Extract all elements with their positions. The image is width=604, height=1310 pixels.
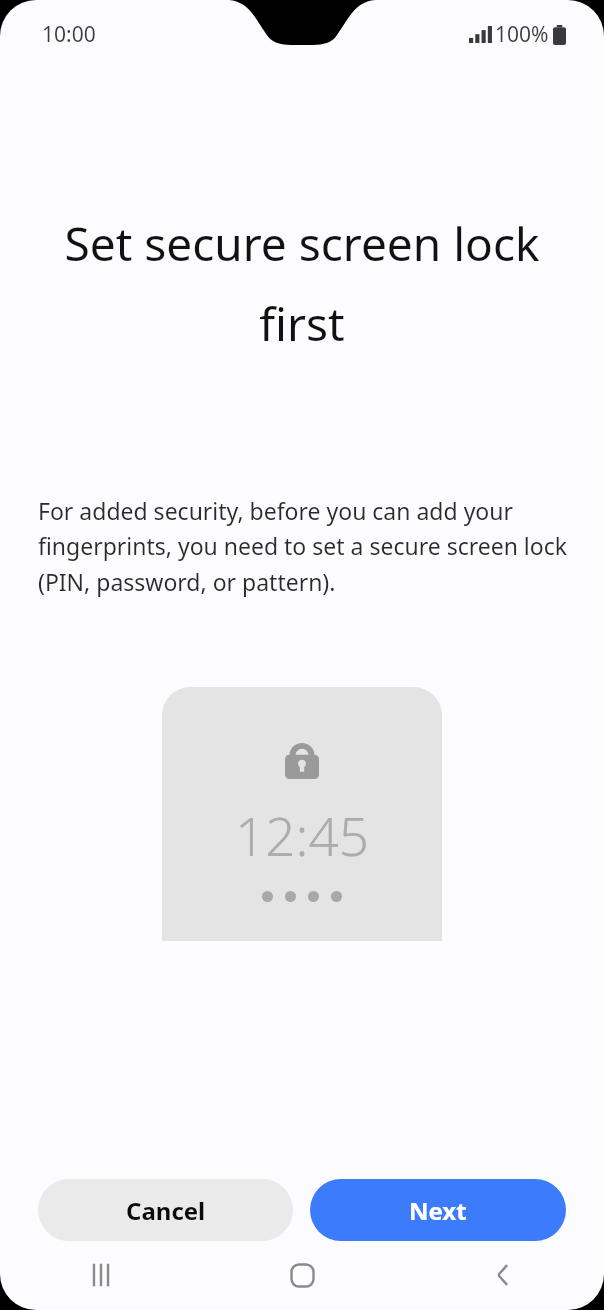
staticText: For added security, before you can add y… <box>38 495 570 598</box>
button[interactable]: Recent apps <box>0 1240 202 1310</box>
button[interactable]: Back <box>403 1240 604 1310</box>
staticText: 12:45 <box>235 799 369 871</box>
staticText: Cancel <box>126 1194 206 1227</box>
staticText: Next <box>409 1194 467 1227</box>
staticText: 10:00 <box>42 20 96 49</box>
staticText: 100% <box>495 20 549 49</box>
button[interactable]: Cancel <box>38 1179 293 1241</box>
staticText: Set secure screen lock first <box>44 212 560 354</box>
button[interactable]: Home <box>202 1240 403 1310</box>
button[interactable]: Next <box>310 1179 566 1241</box>
